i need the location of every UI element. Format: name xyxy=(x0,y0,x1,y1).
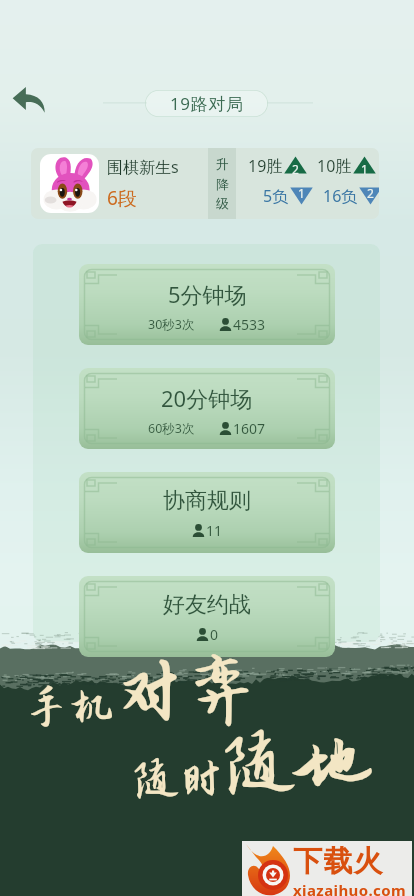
button[interactable]: 好友约战 xyxy=(79,576,335,657)
staticText: 19胜 xyxy=(248,155,283,177)
staticText: 围棋新生s xyxy=(107,156,179,178)
staticText: 4533 xyxy=(233,315,266,334)
button[interactable]: 20分钟场 xyxy=(79,368,335,449)
button[interactable]: 协商规则 xyxy=(79,472,335,553)
staticText: 1607 xyxy=(233,419,266,438)
staticText: 协商规则 xyxy=(163,487,251,515)
staticText: 1 xyxy=(361,161,368,177)
staticText: 2 xyxy=(367,185,374,201)
staticText: 好友约战 xyxy=(163,591,251,619)
staticText: 6段 xyxy=(107,185,137,211)
staticText: 11 xyxy=(206,521,223,540)
staticText: xiazaihuo.com xyxy=(293,880,407,896)
staticText: 对弈 xyxy=(114,652,258,732)
staticText: 60秒3次 xyxy=(148,420,195,437)
button[interactable]: 围棋新生s xyxy=(31,148,379,219)
staticText: 1 xyxy=(298,185,305,201)
staticText: 随时 xyxy=(134,754,224,804)
staticText: 30秒3次 xyxy=(148,316,195,333)
staticText: 2 xyxy=(292,161,299,177)
button[interactable]: Back xyxy=(6,80,48,122)
staticText: 级 xyxy=(216,195,229,211)
staticText: 手机 xyxy=(24,682,114,732)
button[interactable]: 19路对局 xyxy=(145,90,268,117)
staticText: 降 xyxy=(216,176,229,192)
staticText: 20分钟场 xyxy=(161,383,253,413)
staticText: 16负 xyxy=(323,185,358,207)
staticText: 5负 xyxy=(263,185,289,207)
button[interactable]: 5分钟场 xyxy=(79,264,335,345)
staticText: 升 xyxy=(216,156,229,172)
staticText: 10胜 xyxy=(317,155,352,177)
staticText: 下载火 xyxy=(293,843,383,880)
staticText: 0 xyxy=(210,625,219,644)
staticText: 5分钟场 xyxy=(168,279,247,309)
staticText: 19路对局 xyxy=(170,92,244,115)
staticText: 随地 xyxy=(224,724,368,804)
